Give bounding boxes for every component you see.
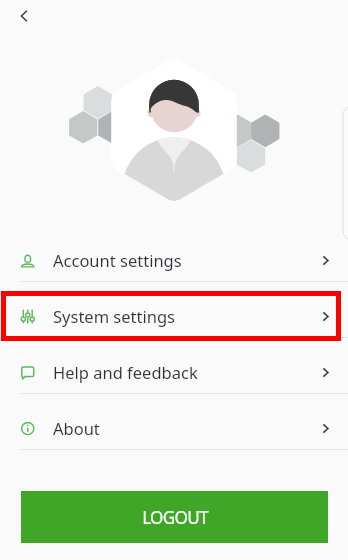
- button[interactable]: About: [0, 400, 348, 456]
- staticText: Help and feedback: [53, 361, 198, 383]
- button[interactable]: LOGOUT: [21, 491, 328, 543]
- staticText: System settings: [53, 305, 175, 327]
- button[interactable]: Account settings: [0, 232, 348, 288]
- staticText: LOGOUT: [142, 506, 208, 529]
- button[interactable]: Help and feedback: [0, 344, 348, 400]
- staticText: About: [53, 417, 100, 439]
- button[interactable]: Back: [8, 0, 40, 32]
- button[interactable]: System settings: [0, 288, 348, 344]
- staticText: Account settings: [53, 249, 182, 271]
